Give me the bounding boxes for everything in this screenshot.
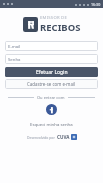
staticText: Efetuar Login xyxy=(36,69,68,76)
staticText: Ou entrar com xyxy=(37,95,65,100)
button[interactable]: Entrar com Facebook xyxy=(46,104,57,115)
staticText: CUVA xyxy=(57,134,70,140)
staticText: 16:30 xyxy=(91,2,101,7)
staticText: Senha xyxy=(8,56,21,62)
staticText: Desenvolvido por xyxy=(27,135,55,140)
button[interactable]: Efetuar Login xyxy=(5,67,98,77)
staticText: EMISSOR DE xyxy=(40,15,67,21)
button[interactable]: Cadastre-se com e-mail xyxy=(5,79,98,89)
button[interactable]: E-mail xyxy=(5,41,98,51)
staticText: RECIBOS xyxy=(40,21,81,34)
staticText: E-mail xyxy=(8,43,21,49)
button[interactable]: Senha xyxy=(5,54,98,64)
staticText: Cadastre-se com e-mail xyxy=(27,81,76,87)
staticText: Esqueci minha senha xyxy=(30,121,73,127)
button[interactable]: Esqueci minha senha xyxy=(27,120,76,128)
